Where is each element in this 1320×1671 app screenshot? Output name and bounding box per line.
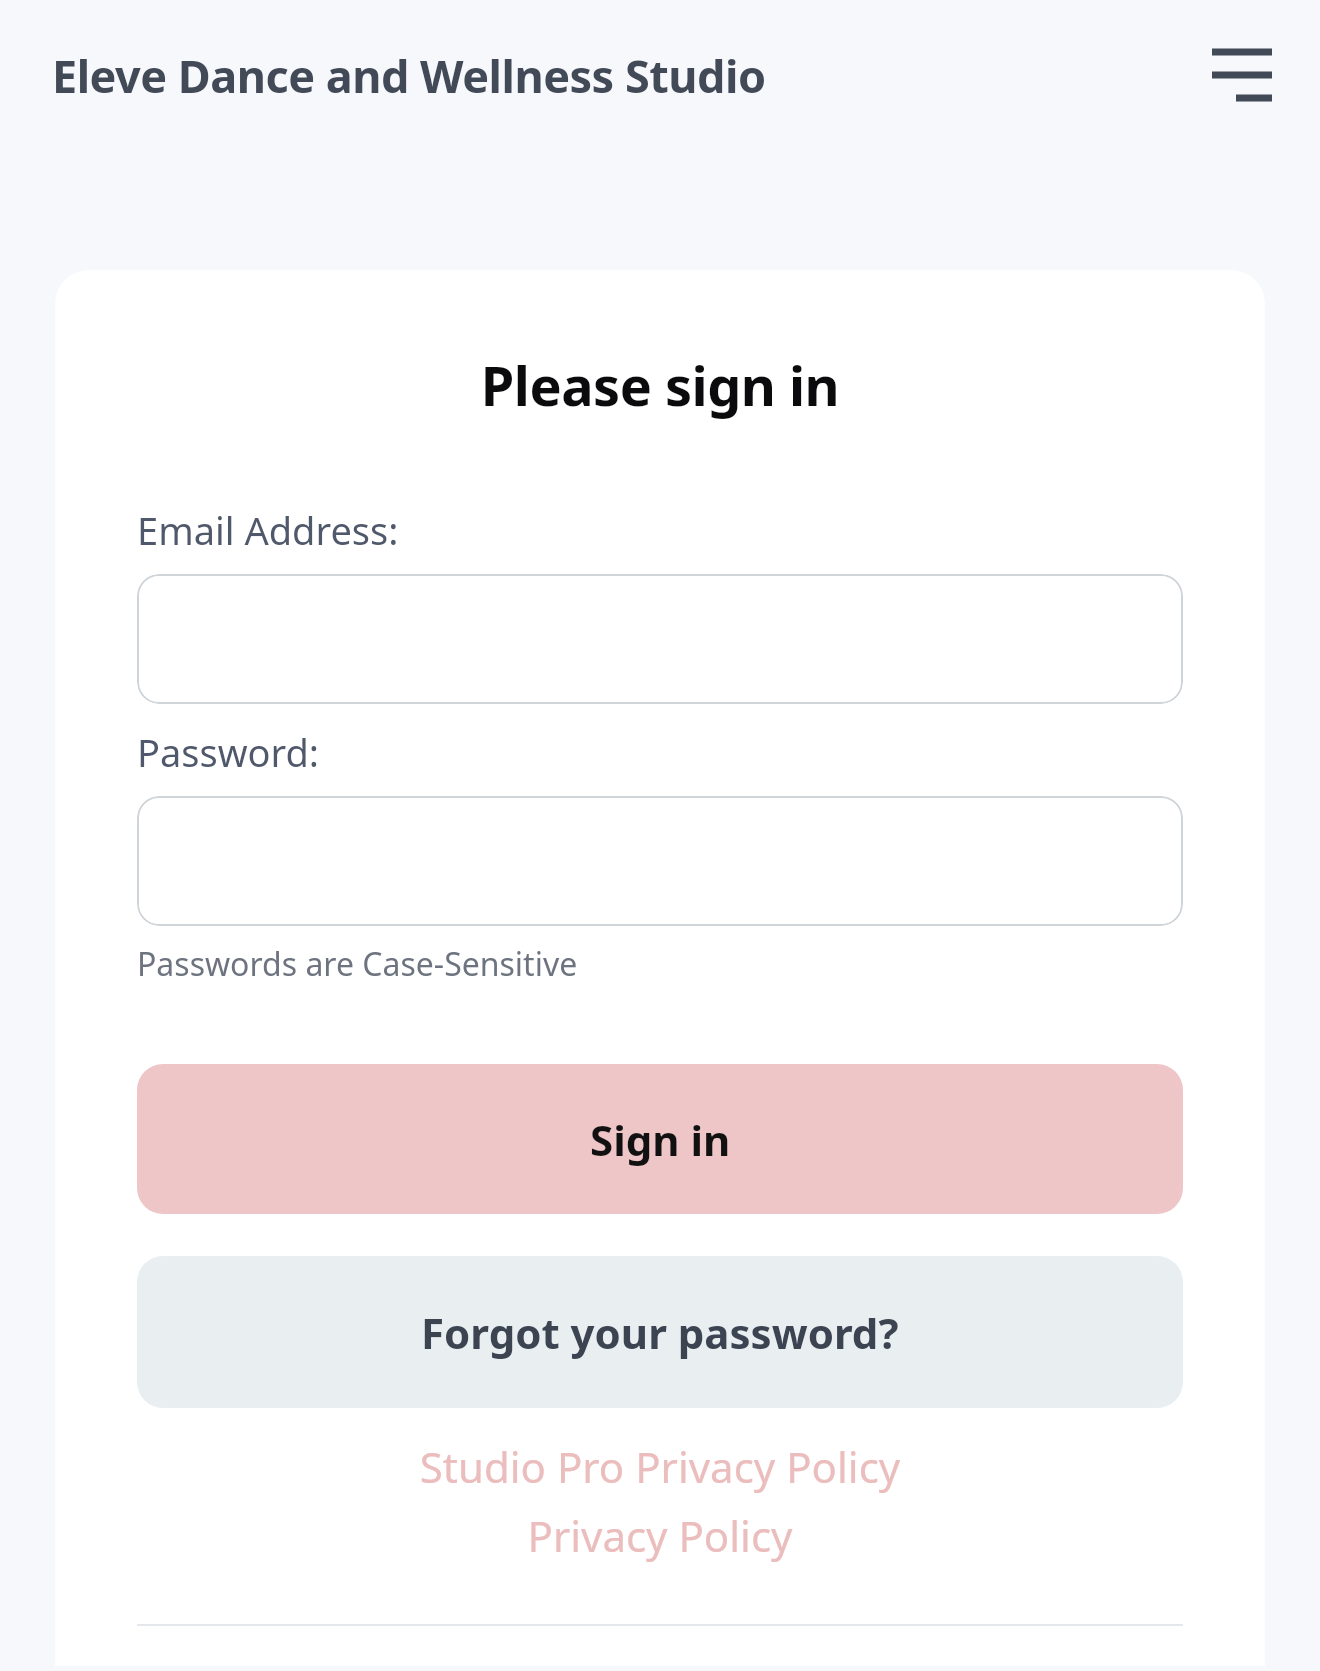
- staticText: Email Address:: [137, 504, 399, 556]
- staticText: Eleve Dance and Wellness Studio: [52, 45, 766, 106]
- button[interactable]: Menu: [1194, 27, 1290, 123]
- button[interactable]: [137, 796, 1183, 926]
- staticText: Sign in: [590, 1111, 731, 1168]
- staticText: Password:: [137, 726, 320, 778]
- button[interactable]: Forgot your password?: [137, 1256, 1183, 1408]
- button[interactable]: Privacy Policy: [137, 1507, 1183, 1564]
- staticText: Please sign in: [137, 348, 1183, 422]
- button[interactable]: [137, 574, 1183, 704]
- staticText: Forgot your password?: [421, 1304, 899, 1361]
- staticText: Passwords are Case-Sensitive: [137, 942, 578, 986]
- button[interactable]: Studio Pro Privacy Policy: [137, 1438, 1183, 1495]
- button[interactable]: Sign in: [137, 1064, 1183, 1214]
